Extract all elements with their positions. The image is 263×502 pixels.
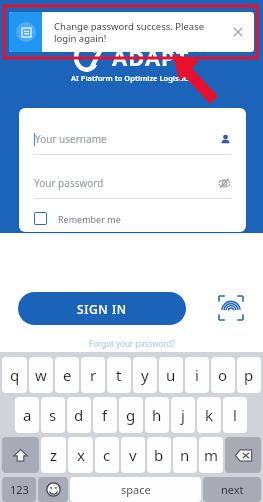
staticText: Your username: [35, 132, 107, 146]
staticText: g: [126, 405, 136, 425]
staticText: t: [116, 365, 122, 385]
button[interactable]: w: [29, 357, 53, 393]
staticText: Your password: [34, 176, 104, 190]
staticText: k: [205, 405, 214, 425]
button[interactable]: Backspace: [225, 437, 261, 473]
button[interactable]: f: [93, 397, 117, 433]
button[interactable]: g: [119, 397, 143, 433]
button[interactable]: Emoji: [38, 477, 68, 502]
button[interactable]: i: [185, 357, 209, 393]
button[interactable]: SIGN IN: [18, 292, 186, 325]
button[interactable]: Remember me: [34, 212, 121, 225]
button[interactable]: u: [159, 357, 183, 393]
staticText: space: [121, 482, 151, 497]
button[interactable]: t: [107, 357, 131, 393]
staticText: u: [166, 365, 176, 385]
button[interactable]: e: [55, 357, 79, 393]
button[interactable]: next: [203, 477, 261, 502]
button[interactable]: x: [68, 437, 93, 473]
button[interactable]: z: [41, 437, 66, 473]
staticText: n: [180, 445, 190, 465]
button[interactable]: q: [2, 357, 27, 393]
staticText: x: [77, 445, 85, 465]
staticText: Change password success. Please login ag…: [54, 20, 224, 45]
button[interactable]: r: [81, 357, 105, 393]
staticText: y: [141, 365, 149, 385]
button[interactable]: space: [70, 477, 201, 502]
staticText: v: [129, 445, 137, 465]
other: Info: [22, 28, 31, 37]
staticText: SIGN IN: [77, 301, 127, 317]
button[interactable]: m: [199, 437, 223, 473]
button[interactable]: v: [121, 437, 145, 473]
staticText: r: [90, 365, 97, 385]
button[interactable]: k: [197, 397, 221, 433]
button[interactable]: l: [223, 397, 247, 433]
staticText: q: [10, 365, 20, 385]
staticText: l: [233, 405, 237, 425]
button[interactable]: h: [145, 397, 169, 433]
staticText: 123: [10, 482, 29, 497]
staticText: d: [74, 405, 84, 425]
button[interactable]: n: [173, 437, 197, 473]
staticText: s: [49, 405, 57, 425]
staticText: a: [23, 405, 32, 425]
other: Show password: [218, 178, 231, 188]
button[interactable]: y: [133, 357, 157, 393]
staticText: AI Platform to Optimize Logistics: [71, 73, 192, 83]
button[interactable]: a: [15, 397, 39, 433]
button[interactable]: c: [95, 437, 119, 473]
button[interactable]: b: [147, 437, 171, 473]
staticText: w: [35, 365, 47, 385]
button[interactable]: Your password: [34, 173, 231, 193]
staticText: f: [102, 405, 108, 425]
staticText: z: [50, 445, 58, 465]
staticText: p: [244, 365, 254, 385]
staticText: m: [204, 445, 219, 465]
staticText: h: [152, 405, 162, 425]
staticText: e: [63, 365, 72, 385]
button[interactable]: d: [67, 397, 91, 433]
button[interactable]: p: [237, 357, 261, 393]
staticText: next: [221, 482, 244, 497]
staticText: i: [195, 365, 199, 385]
button[interactable]: Close: [224, 18, 252, 46]
other: User: [220, 134, 231, 145]
staticText: o: [218, 365, 228, 385]
button[interactable]: Fingerprint login: [216, 293, 246, 323]
button[interactable]: 123: [2, 477, 36, 502]
staticText: c: [103, 445, 111, 465]
button[interactable]: j: [171, 397, 195, 433]
button[interactable]: s: [41, 397, 65, 433]
button[interactable]: o: [211, 357, 235, 393]
button[interactable]: Shift: [2, 437, 39, 473]
staticText: b: [154, 445, 164, 465]
button[interactable]: Forgot your password?: [89, 338, 175, 349]
button[interactable]: Your username: [34, 129, 231, 149]
staticText: Remember me: [58, 213, 121, 225]
button[interactable]: Info: [9, 12, 254, 52]
staticText: j: [181, 405, 185, 425]
staticText: ADAPT: [112, 42, 190, 72]
